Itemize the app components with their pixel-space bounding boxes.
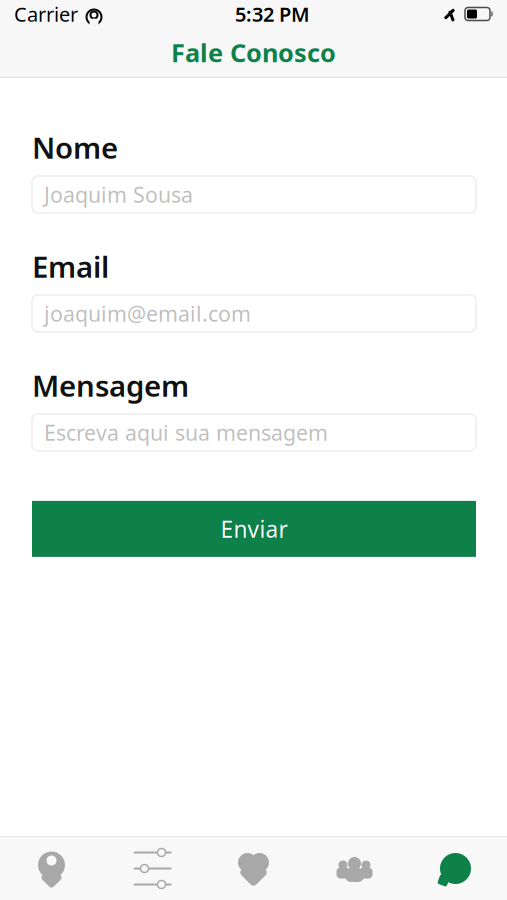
button[interactable]: Groups xyxy=(304,837,405,900)
staticText: joaquim@email.com xyxy=(44,299,251,327)
staticText: Email xyxy=(32,247,109,286)
button[interactable]: Chat xyxy=(405,837,506,900)
button[interactable]: joaquim@email.com xyxy=(32,295,476,332)
button[interactable]: Enviar xyxy=(32,501,476,557)
button[interactable]: Locations xyxy=(1,837,102,900)
staticText: Joaquim Sousa xyxy=(44,180,193,209)
staticText: Mensagem xyxy=(32,366,189,405)
staticText: Enviar xyxy=(220,514,287,544)
staticText: Carrier xyxy=(14,1,78,27)
button[interactable]: Joaquim Sousa xyxy=(32,176,476,213)
staticText: 5:32 PM xyxy=(235,1,310,27)
staticText: Escreva aqui sua mensagem xyxy=(44,418,328,446)
button[interactable]: Filters xyxy=(102,837,203,900)
button[interactable]: Escreva aqui sua mensagem xyxy=(32,414,476,451)
button[interactable]: Favorites xyxy=(203,837,304,900)
staticText: Nome xyxy=(32,128,118,167)
staticText: Fale Conosco xyxy=(171,36,336,69)
